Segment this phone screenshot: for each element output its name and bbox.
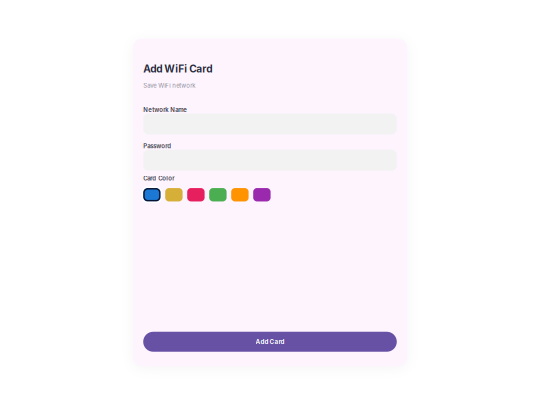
button[interactable]: Purple [253, 188, 271, 201]
button[interactable]: Yellow [165, 188, 183, 201]
staticText: Network Name [143, 106, 187, 114]
button[interactable]: Add Card [143, 332, 397, 352]
staticText: Add WiFi Card [143, 63, 212, 75]
button[interactable]: Pink [187, 188, 205, 201]
staticText: Save WiFi network [143, 82, 195, 89]
staticText: Password [143, 142, 171, 150]
staticText: Add Card [255, 338, 284, 346]
button[interactable]: Orange [231, 188, 249, 201]
staticText: Card Color [143, 175, 174, 182]
button[interactable]: Blue [143, 188, 161, 201]
button[interactable]: Green [209, 188, 227, 201]
